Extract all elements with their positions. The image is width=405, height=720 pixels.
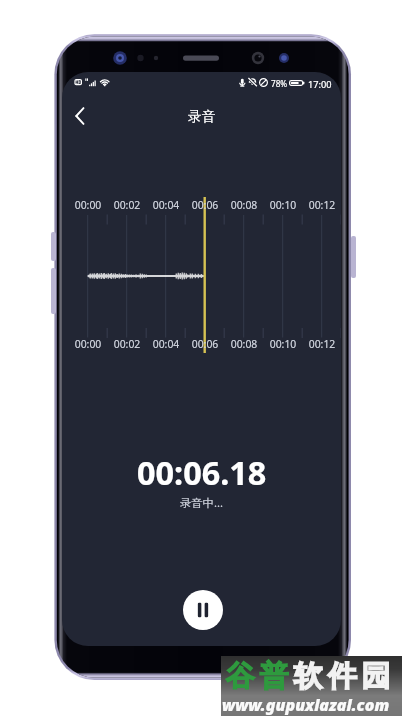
staticText: 17:00: [308, 78, 332, 91]
button[interactable]: Back: [66, 99, 92, 133]
staticText: 00:00: [70, 198, 106, 212]
staticText: www.gupuxlazal.com: [222, 694, 390, 716]
staticText: 00:12: [304, 198, 340, 212]
staticText: 录音: [188, 108, 216, 125]
staticText: 00:06.18: [137, 450, 267, 494]
staticText: 00:10: [265, 198, 301, 212]
staticText: 00:10: [265, 337, 301, 351]
staticText: 00:00: [70, 337, 106, 351]
staticText: 00:12: [304, 337, 340, 351]
staticText: 00:06: [187, 198, 223, 212]
staticText: 00:02: [109, 198, 145, 212]
staticText: 00:08: [226, 337, 262, 351]
staticText: 78%: [271, 78, 288, 89]
staticText: 00:04: [148, 337, 184, 351]
staticText: 00:08: [226, 198, 262, 212]
staticText: 谷普: [223, 658, 291, 695]
staticText: 00:06: [187, 337, 223, 351]
staticText: 录音中...: [180, 495, 223, 510]
button[interactable]: Pause recording: [183, 590, 223, 630]
staticText: 00:02: [109, 337, 145, 351]
staticText: 00:04: [148, 198, 184, 212]
staticText: 软件园: [291, 658, 393, 695]
